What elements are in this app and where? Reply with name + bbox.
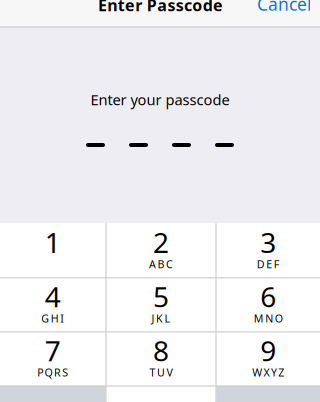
staticText: 9 (260, 332, 276, 369)
button[interactable]: 9 (216, 331, 320, 385)
button[interactable]: 5 (106, 277, 215, 331)
button[interactable]: 6 (216, 277, 320, 331)
staticText: Enter Passcode (98, 0, 223, 16)
button[interactable]: Cancel (247, 0, 311, 16)
staticText: Enter your passcode (90, 90, 229, 109)
button[interactable]: 4 (0, 277, 105, 331)
button[interactable]: 3 (216, 223, 320, 277)
staticText: 7 (45, 332, 61, 369)
staticText: JKL (147, 311, 175, 325)
staticText: 8 (153, 332, 169, 369)
staticText: MNO (249, 311, 287, 325)
staticText: ABC (145, 257, 177, 271)
staticText: 3 (260, 224, 276, 261)
staticText: WXYZ (248, 365, 289, 379)
staticText: PQRS (33, 365, 73, 379)
staticText: 1 (45, 224, 61, 261)
staticText: GHI (37, 311, 68, 325)
staticText: TUV (145, 365, 177, 379)
staticText: Cancel (257, 0, 311, 15)
staticText: 5 (153, 278, 169, 315)
button[interactable]: 1 (0, 223, 105, 277)
button[interactable]: 7 (0, 331, 105, 385)
button[interactable]: 8 (106, 331, 215, 385)
staticText: DEF (252, 257, 284, 271)
button[interactable]: 2 (106, 223, 215, 277)
staticText: 6 (260, 278, 276, 315)
staticText: 2 (153, 224, 169, 261)
staticText: 4 (45, 278, 61, 315)
